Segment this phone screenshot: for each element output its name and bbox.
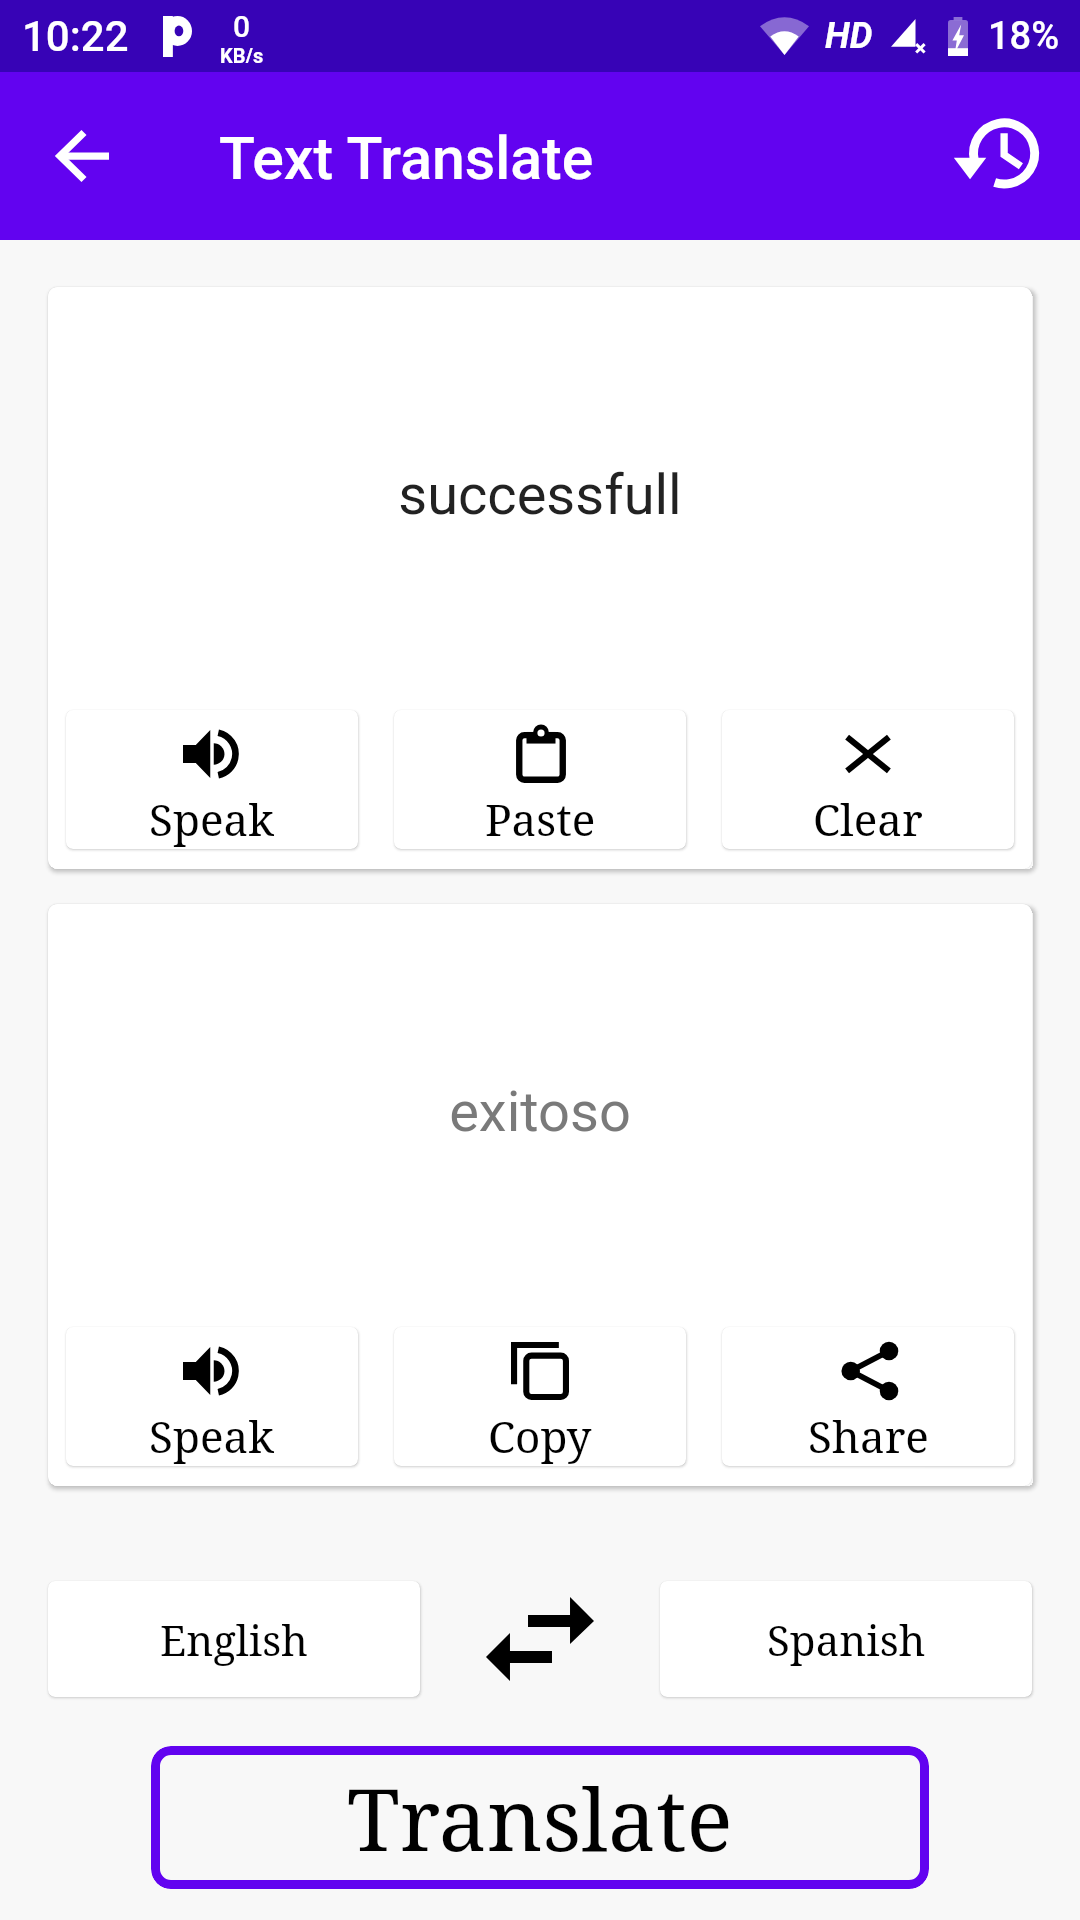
button[interactable]: Speak [66,710,358,849]
staticText: exitoso [449,1079,631,1145]
staticText: successfull [398,462,682,528]
staticText: HD [825,15,873,57]
button[interactable]: Copy [394,1327,686,1466]
staticText: 18% [988,14,1060,59]
staticText: Spanish [767,1611,926,1668]
button[interactable]: Share [722,1327,1014,1466]
staticText: Text Translate [219,124,594,193]
staticText: Translate [347,1759,733,1876]
button[interactable]: Paste [394,710,686,849]
staticText: Speak [149,1406,275,1466]
button[interactable]: Back [30,102,138,210]
staticText: Copy [488,1406,592,1466]
staticText: Speak [149,789,275,849]
staticText: English [160,1611,308,1668]
button[interactable]: Swap languages [460,1581,620,1697]
button[interactable]: English [48,1581,420,1697]
staticText: Share [808,1406,929,1466]
staticText: KB/s [220,44,264,63]
staticText: Clear [813,789,923,849]
button[interactable]: Clear [722,710,1014,849]
button[interactable]: Speak [66,1327,358,1466]
button[interactable]: Translate [151,1746,929,1889]
staticText: Paste [485,789,596,849]
staticText: 0 [233,9,251,44]
staticText: 10:22 [22,12,129,61]
button[interactable]: History [944,102,1052,210]
button[interactable]: Spanish [660,1581,1032,1697]
